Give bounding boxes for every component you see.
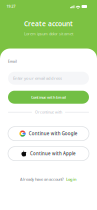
- staticText: Continue with Google: [29, 131, 78, 137]
- staticText: Continue with Apple: [30, 151, 76, 157]
- button[interactable]: Continue with Email: [8, 91, 89, 104]
- staticText: Create account: [24, 19, 73, 28]
- staticText: 19:27: [6, 4, 15, 9]
- button[interactable]: Login: [66, 177, 77, 182]
- staticText: Already have an account?: [20, 177, 64, 182]
- staticText: Or continue with: [35, 110, 62, 115]
- staticText: Email: [8, 59, 17, 64]
- staticText: Lorem ipsum dolor sit amet: [24, 31, 73, 36]
- button[interactable]: Continue with Apple: [8, 147, 89, 161]
- staticText: Continue with Email: [31, 95, 66, 100]
- staticText: Enter your email address: [13, 75, 62, 81]
- button[interactable]: Continue with Google: [8, 127, 89, 141]
- staticText: Login: [66, 177, 77, 182]
